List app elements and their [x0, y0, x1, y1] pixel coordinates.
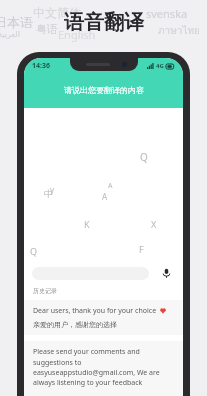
button[interactable]: Voice input [157, 264, 175, 282]
staticText: Q [30, 245, 38, 257]
button[interactable]: Dear users, thank you for your choice [24, 300, 183, 335]
staticText: 日本语 [0, 14, 33, 30]
staticText: K [84, 218, 90, 230]
staticText: y [50, 184, 55, 195]
button[interactable]: Please send your comments and suggestion… [24, 341, 183, 396]
staticText: X [151, 218, 157, 230]
staticText: Dear users, thank you for your choice [33, 306, 157, 316]
staticText: A [102, 191, 108, 202]
staticText: 亲爱的用户，感谢您的选择 [33, 320, 117, 329]
staticText: العربية [0, 30, 20, 39]
staticText: 粤语 [36, 22, 58, 36]
staticText: Please send your comments and suggestion… [33, 347, 174, 387]
staticText: 中 [44, 188, 53, 199]
staticText: 14:36 [32, 61, 50, 71]
staticText: ภาษาไทย [158, 23, 200, 39]
staticText: 语音翻译 [64, 10, 144, 35]
staticText: English [58, 27, 96, 42]
staticText: svenska [146, 6, 188, 21]
staticText: 中文简体 [33, 5, 81, 20]
staticText: F [139, 243, 144, 255]
staticText: 4G [156, 62, 164, 70]
staticText: A [108, 181, 113, 191]
staticText: 请说出您要翻译的内容 [64, 85, 144, 95]
staticText: Q [140, 150, 148, 164]
staticText: 历史记录 [33, 287, 57, 295]
